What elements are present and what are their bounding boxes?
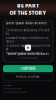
staticText: Consectetur adipiscing elit [3, 88, 20, 90]
staticText: Restore purchase [16, 75, 40, 78]
staticText: et dolore magna aliqua ut enim ad [6, 44, 50, 51]
staticText: Lorem ipsum [3, 81, 12, 83]
staticText: Dolor sit amet [3, 84, 11, 86]
staticText: sed do eiusmod tempor incididunt ut [3, 91, 26, 93]
staticText: Lorem ipsum dolor sit amet [7, 52, 48, 56]
staticText: eiusmod tempor incididunt ut labore [6, 36, 49, 43]
staticText: consectetur adipiscing elit sed [18, 57, 38, 59]
staticText: Consectetur adipiscing elit sed do [6, 28, 50, 36]
staticText: BE PART [17, 2, 39, 9]
button[interactable]: Restore purchase [3, 73, 53, 80]
staticText: OF THE STORY [9, 9, 46, 16]
staticText: Lorem ipsum dolor sit amet [6, 22, 47, 25]
staticText: minim veniam quis nostrud [6, 52, 43, 55]
staticText: CONTINUE [21, 67, 35, 70]
button[interactable]: CONTINUE [3, 65, 53, 72]
